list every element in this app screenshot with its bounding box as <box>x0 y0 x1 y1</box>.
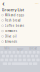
staticText: Bread <box>29 47 37 50</box>
button[interactable]: Eggs <box>13 46 27 51</box>
button[interactable]: Key <box>37 51 40 54</box>
button[interactable]: Olive oil <box>2 34 38 39</box>
button[interactable]: Key <box>0 51 3 54</box>
button[interactable]: Key <box>8 62 11 65</box>
button[interactable]: Key <box>0 59 4 61</box>
button[interactable]: Fresh bread <box>2 18 38 23</box>
button[interactable]: Key <box>8 51 11 54</box>
button[interactable]: Key <box>23 55 25 57</box>
button[interactable]: Key <box>9 59 13 61</box>
button[interactable]: More <box>35 1 38 5</box>
staticText: Almonds <box>5 40 17 43</box>
button[interactable]: Key <box>13 51 15 54</box>
staticText: Grocery List <box>2 7 25 12</box>
staticText: Coffee beans <box>5 24 24 27</box>
staticText: ⋯ <box>35 1 39 6</box>
button[interactable]: Key <box>21 51 23 54</box>
button[interactable]: Coffee beans <box>2 23 38 28</box>
button[interactable]: Key <box>29 51 32 54</box>
button[interactable]: Key <box>14 55 17 57</box>
staticText: Milk and eggs <box>5 13 24 17</box>
button[interactable]: Bread <box>27 46 40 51</box>
staticText: Eggs <box>17 47 23 50</box>
staticText: Olive oil <box>5 35 17 38</box>
button[interactable]: Key <box>36 59 40 61</box>
staticText: Milk <box>4 47 9 50</box>
button[interactable]: Key <box>33 62 37 65</box>
button[interactable]: Tomatoes <box>2 28 38 34</box>
button[interactable]: Key <box>17 51 19 54</box>
button[interactable]: Milk <box>0 46 13 51</box>
button[interactable]: Almonds <box>2 39 38 44</box>
button[interactable]: Key <box>29 62 32 65</box>
button[interactable]: Key <box>33 51 36 54</box>
staticText: Tomatoes <box>5 29 17 33</box>
button[interactable]: Key <box>27 59 31 61</box>
button[interactable]: Key <box>25 51 27 54</box>
button[interactable]: Key <box>3 62 7 65</box>
button[interactable]: Back <box>2 1 5 5</box>
button[interactable]: Key <box>4 51 7 54</box>
button[interactable]: Milk and eggs <box>2 12 38 18</box>
staticText: ‹ <box>2 0 4 8</box>
button[interactable]: Key <box>18 59 22 61</box>
staticText: Fresh bread <box>5 19 21 22</box>
